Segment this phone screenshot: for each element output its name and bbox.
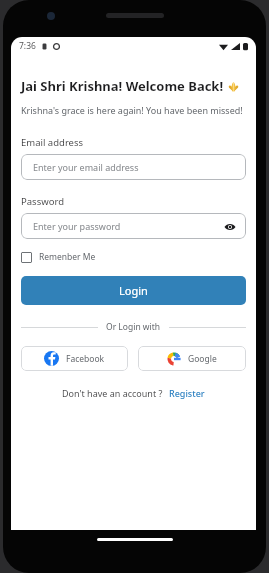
staticText: Login xyxy=(119,283,148,298)
staticText: Remenber Me xyxy=(39,251,96,263)
staticText: Jai Shri Krishna! Welcome Back! xyxy=(21,77,224,95)
button[interactable]: Google xyxy=(138,346,246,371)
button[interactable]: Password field xyxy=(21,213,246,239)
button[interactable]: Login xyxy=(21,276,246,305)
button[interactable]: Facebook xyxy=(21,346,128,371)
staticText: Enter your email address xyxy=(33,161,139,173)
staticText: Or Login with xyxy=(106,321,161,333)
staticText: Don't have an account ? xyxy=(62,387,163,399)
staticText: Enter your password xyxy=(33,220,121,232)
button[interactable]: Remenber Me xyxy=(21,251,96,263)
staticText: Password xyxy=(21,195,64,208)
staticText: Email address xyxy=(21,136,84,149)
staticText: Register xyxy=(169,387,205,399)
button[interactable]: Show password xyxy=(223,220,236,233)
button[interactable]: Email address field xyxy=(21,154,246,180)
staticText: Facebook xyxy=(66,353,105,365)
staticText: Google xyxy=(188,353,217,365)
button[interactable]: Register xyxy=(169,387,205,399)
staticText: 7:36 xyxy=(19,40,36,52)
staticText: Krishna's grace is here again! You have … xyxy=(21,104,243,116)
